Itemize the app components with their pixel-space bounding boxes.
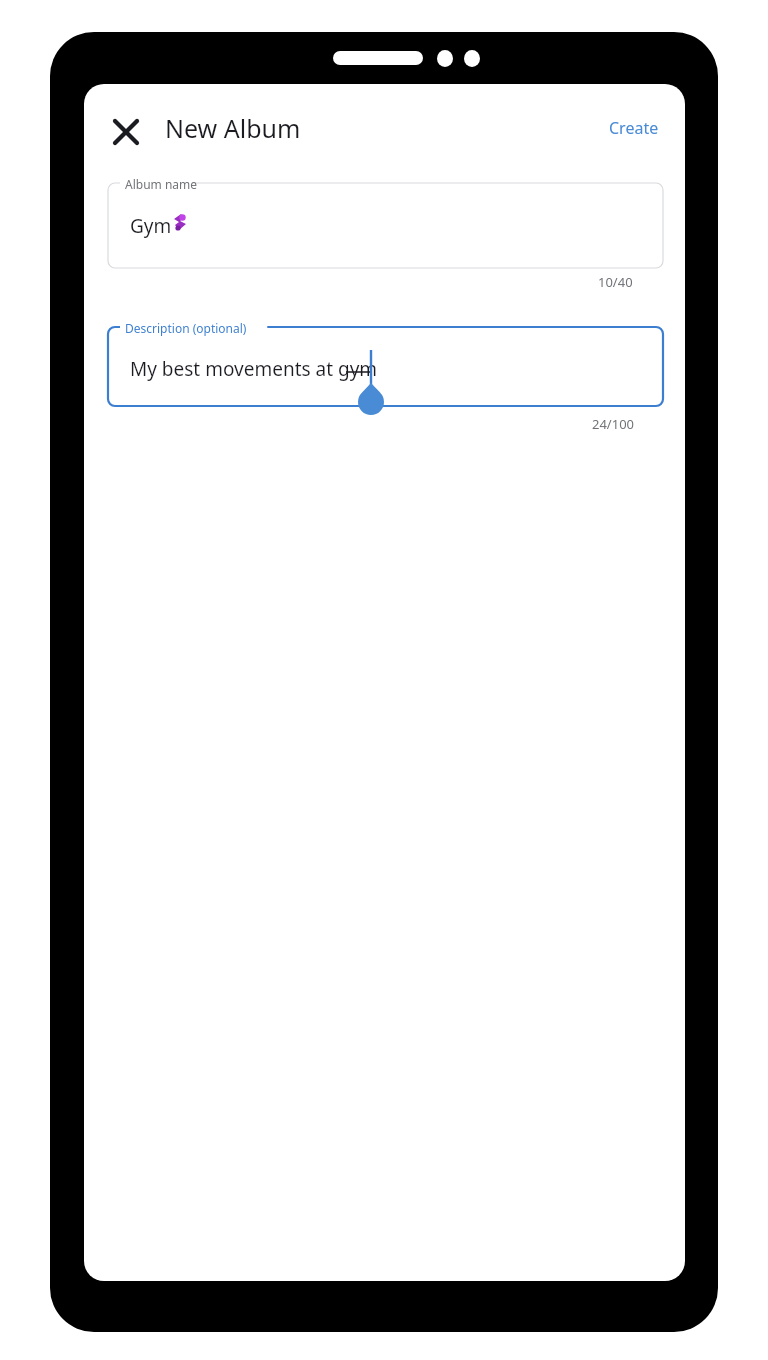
staticText: Gym — [130, 213, 172, 239]
staticText: Description (optional) — [125, 320, 247, 336]
button[interactable]: Create — [598, 110, 670, 146]
button[interactable]: Album name — [108, 183, 663, 268]
staticText: New Album — [165, 111, 301, 145]
staticText: Album name — [125, 176, 198, 192]
staticText: 10/40 — [598, 273, 633, 291]
staticText: Create — [609, 117, 659, 139]
staticText: My best movements at gym — [130, 356, 378, 382]
staticText: 24/100 — [592, 415, 635, 433]
button[interactable]: Description (optional) — [108, 327, 663, 406]
button[interactable]: Close — [98, 104, 154, 160]
